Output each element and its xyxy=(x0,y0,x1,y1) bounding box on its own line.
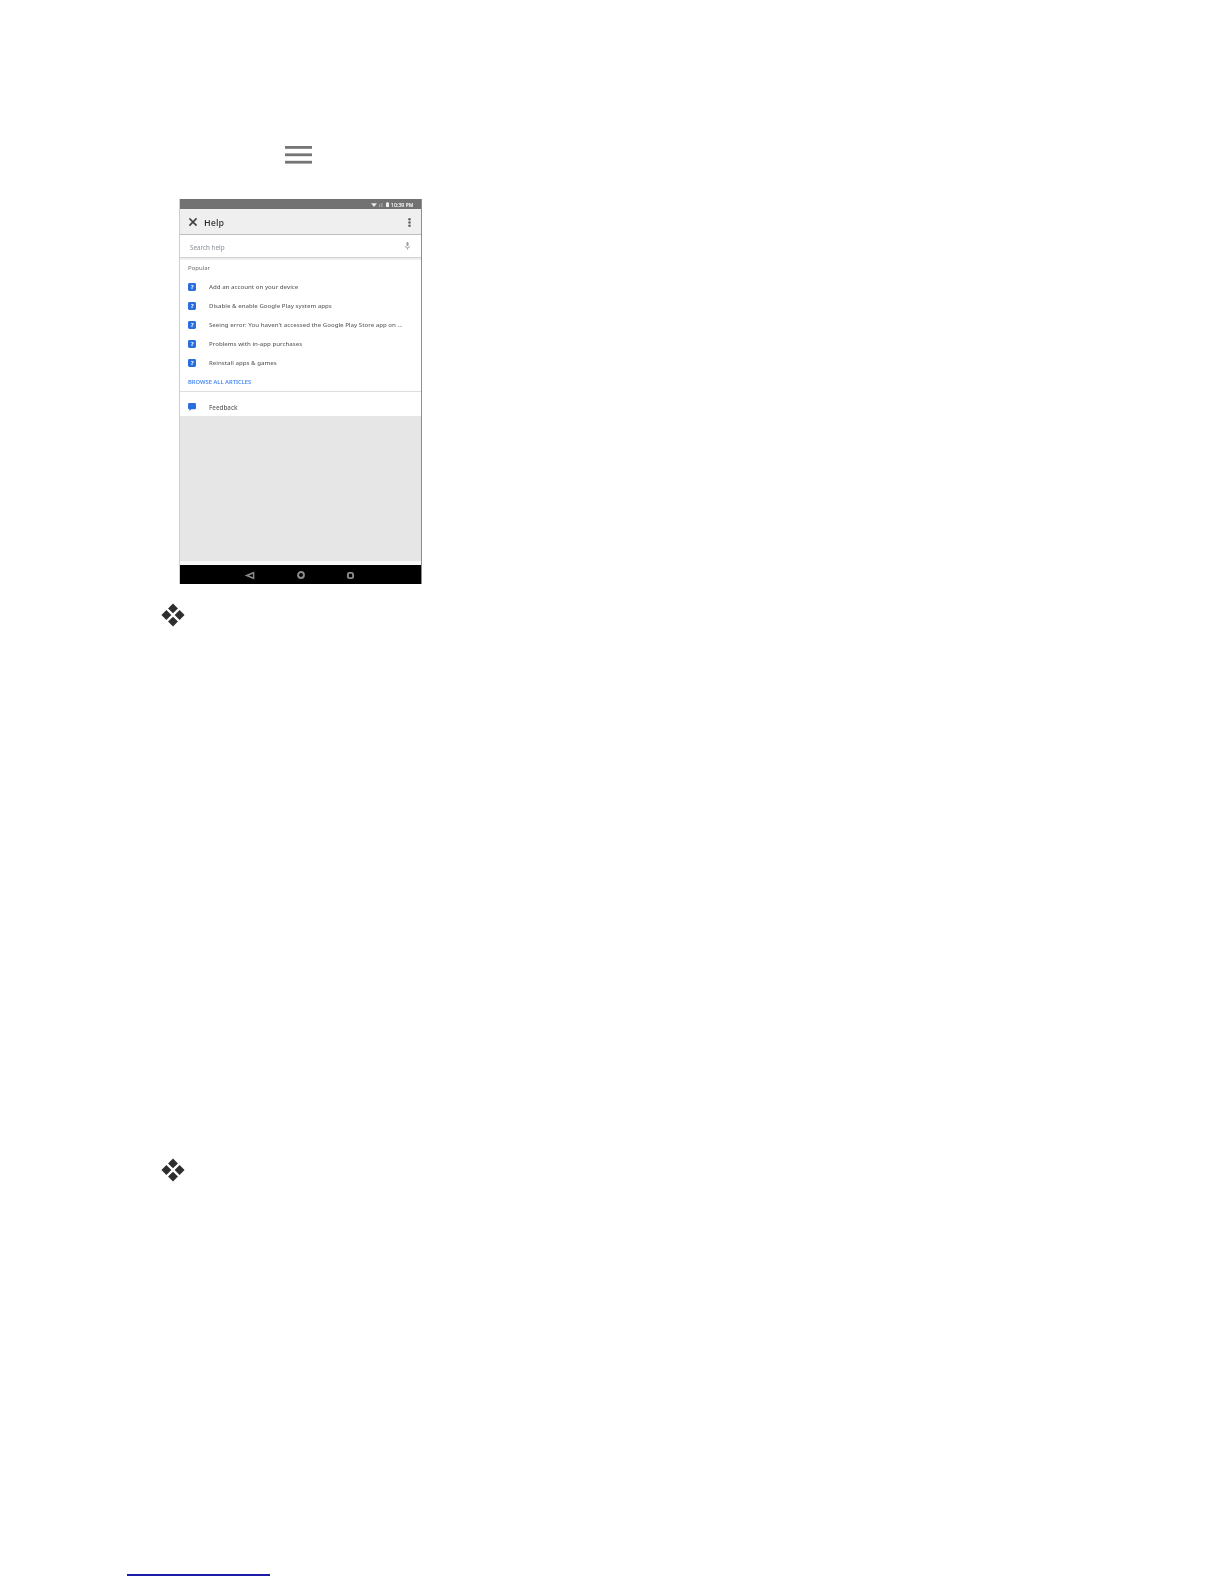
staticText: ? xyxy=(191,302,194,310)
button[interactable]: BROWSE ALL ARTICLES xyxy=(180,372,421,391)
button[interactable]: ? xyxy=(180,296,421,315)
staticText: 10:39 PM xyxy=(391,201,414,208)
staticText: ? xyxy=(191,283,194,291)
button[interactable]: ? xyxy=(180,353,421,372)
staticText: Problems with in-app purchases xyxy=(209,339,303,347)
other: Menu xyxy=(285,146,312,164)
button[interactable]: Back xyxy=(242,567,258,583)
button[interactable]: ? xyxy=(180,277,421,296)
staticText: Feedback xyxy=(209,403,238,412)
button[interactable]: Recents xyxy=(342,567,358,583)
staticText: Search help xyxy=(190,243,225,252)
staticText: ? xyxy=(191,321,194,329)
staticText: Popular xyxy=(188,264,211,272)
staticText: Help xyxy=(204,216,225,228)
staticText: ? xyxy=(191,340,194,348)
staticText: Add an account on your device xyxy=(209,282,299,290)
button[interactable]: Close xyxy=(187,216,199,228)
staticText: Reinstall apps & games xyxy=(209,358,277,366)
staticText: Disable & enable Google Play system apps xyxy=(209,301,332,309)
staticText: BROWSE ALL ARTICLES xyxy=(188,378,252,386)
button[interactable]: ? xyxy=(180,315,421,334)
button[interactable]: Feedback xyxy=(180,395,421,419)
staticText: Seeing error: You haven't accessed the G… xyxy=(209,320,403,328)
staticText: ? xyxy=(191,359,194,367)
button[interactable]: ? xyxy=(180,334,421,353)
button[interactable]: Home xyxy=(293,567,309,583)
button[interactable]: More options xyxy=(401,214,417,230)
